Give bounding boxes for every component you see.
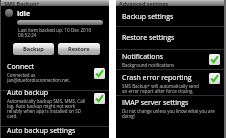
staticText: IMAP server settings: [122, 98, 189, 108]
button[interactable]: Toggle setting: [94, 93, 105, 104]
button[interactable]: Connect: [1, 60, 109, 90]
staticText: Backup: [23, 45, 44, 53]
button[interactable]: Restore: [58, 43, 100, 55]
button[interactable]: Auto backup: [1, 91, 109, 127]
staticText: Do not change unless you know what you a…: [122, 108, 215, 119]
staticText: Automatically backup SMS, MMS, Call log.…: [7, 98, 85, 119]
staticText: Notifications: [122, 52, 164, 62]
button[interactable]: Backup: [13, 43, 54, 55]
staticText: SMS Backup+ will automatically send an e…: [122, 83, 199, 94]
staticText: Connected as jan@duefordisconnection.net…: [7, 72, 71, 83]
button[interactable]: Backup settings: [116, 7, 224, 26]
staticText: Restore: [68, 45, 90, 53]
staticText: Backup settings: [122, 12, 174, 22]
button[interactable]: Notifications: [116, 50, 224, 69]
staticText: Restore settings: [122, 33, 175, 43]
staticText: Auto backup: [7, 88, 49, 98]
button[interactable]: Auto backup settings: [1, 127, 109, 138]
button[interactable]: IMAP server settings: [116, 96, 224, 123]
button[interactable]: Restore settings: [116, 27, 224, 49]
staticText: Last item backed up: 10 Dec 2010 00:52:2…: [18, 27, 92, 38]
button[interactable]: Toggle setting: [209, 54, 220, 65]
button[interactable]: Crash error reporting: [116, 70, 224, 95]
button[interactable]: Toggle setting: [209, 73, 220, 84]
staticText: SMS Backup+: [4, 0, 40, 6]
staticText: Advanced settings: [119, 0, 169, 6]
staticText: Connect: [7, 62, 34, 72]
staticText: Auto backup settings: [7, 126, 76, 136]
staticText: Crash error reporting: [122, 73, 192, 83]
other: Status: [5, 9, 13, 17]
staticText: Background notifications: [122, 62, 175, 68]
button[interactable]: Toggle setting: [94, 68, 105, 79]
staticText: Idle: [17, 9, 31, 19]
